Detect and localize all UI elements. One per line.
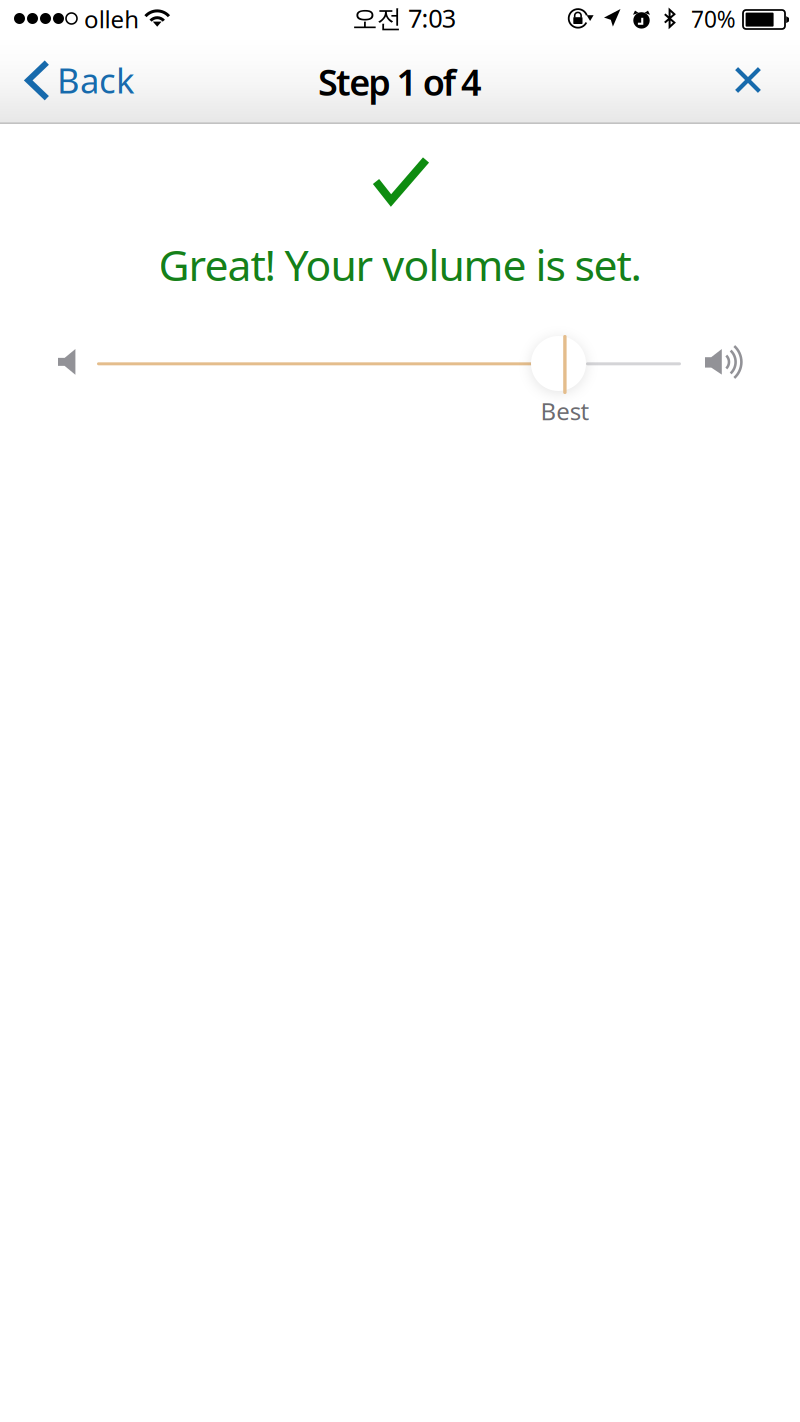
staticText: Step 1 of 4 — [318, 58, 482, 106]
staticText: Great! Your volume is set. — [158, 236, 641, 293]
staticText: olleh — [84, 3, 139, 35]
staticText: 오전 7:03 — [352, 1, 456, 35]
staticText: Best — [540, 395, 589, 427]
button[interactable]: Close — [707, 39, 789, 121]
button[interactable]: Volume — [531, 336, 586, 391]
staticText: Back — [57, 57, 135, 103]
staticText: 70% — [691, 4, 736, 34]
button[interactable]: Back — [0, 40, 150, 122]
